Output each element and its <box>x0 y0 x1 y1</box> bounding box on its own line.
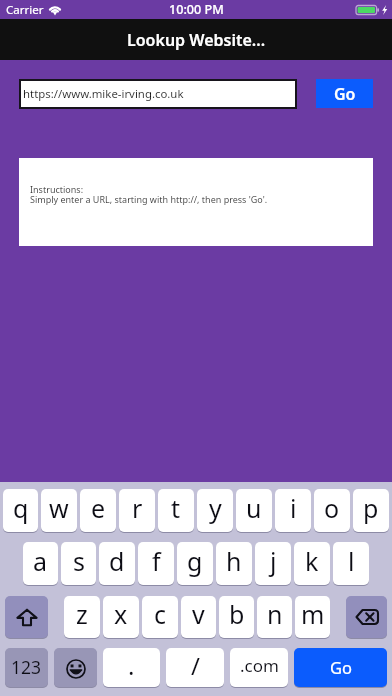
button[interactable]: m <box>295 596 330 638</box>
staticText: x <box>114 597 128 631</box>
staticText: m <box>301 597 325 631</box>
staticText: Go <box>334 83 356 105</box>
button[interactable]: Go <box>294 648 387 687</box>
staticText: Lookup Website... <box>127 29 266 51</box>
staticText: t <box>171 491 181 525</box>
staticText: y <box>209 491 222 525</box>
button[interactable]: f <box>138 542 174 585</box>
staticText: f <box>152 544 161 578</box>
staticText: d <box>109 544 125 578</box>
button[interactable]: https://www.mike-irving.co.uk <box>19 79 297 109</box>
staticText: r <box>132 491 143 525</box>
staticText: s <box>73 544 85 578</box>
button[interactable]: j <box>255 542 291 585</box>
staticText: Instructions: Simply enter a URL, starti… <box>30 183 268 206</box>
button[interactable]: x <box>103 596 139 638</box>
staticText: e <box>91 491 106 525</box>
button[interactable]: Emoji keyboard <box>54 648 97 687</box>
button[interactable]: Backspace <box>346 596 387 638</box>
staticText: Go <box>330 656 352 678</box>
staticText: c <box>154 597 167 631</box>
staticText: 10:00 PM <box>169 1 224 18</box>
staticText: . <box>128 649 135 682</box>
button[interactable]: o <box>314 489 350 532</box>
staticText: b <box>229 597 245 631</box>
button[interactable]: w <box>41 489 77 532</box>
staticText: z <box>76 597 88 631</box>
button[interactable]: g <box>177 542 213 585</box>
button[interactable]: s <box>61 542 96 585</box>
staticText: g <box>187 544 203 578</box>
staticText: v <box>192 597 205 631</box>
button[interactable]: p <box>353 489 389 532</box>
button[interactable]: t <box>158 489 194 532</box>
staticText: u <box>246 491 262 525</box>
button[interactable]: q <box>3 489 38 532</box>
button[interactable]: .com <box>230 648 288 687</box>
button[interactable]: b <box>219 596 254 638</box>
button[interactable]: h <box>216 542 252 585</box>
button[interactable]: c <box>142 596 178 638</box>
button[interactable]: k <box>294 542 330 585</box>
button[interactable]: l <box>333 542 369 585</box>
staticText: j <box>270 544 277 578</box>
staticText: n <box>267 597 283 631</box>
staticText: h <box>226 544 242 578</box>
button[interactable]: z <box>64 596 100 638</box>
button[interactable]: r <box>119 489 155 532</box>
staticText: i <box>290 491 297 525</box>
button[interactable]: i <box>275 489 311 532</box>
button[interactable]: u <box>236 489 272 532</box>
button[interactable]: / <box>166 648 224 687</box>
button[interactable]: . <box>103 648 160 687</box>
button[interactable]: Instructions: Simply enter a URL, starti… <box>19 158 373 246</box>
button[interactable]: Shift <box>5 596 48 638</box>
staticText: https://www.mike-irving.co.uk <box>23 86 184 102</box>
staticText: w <box>49 491 69 525</box>
staticText: l <box>348 544 355 578</box>
staticText: o <box>324 491 340 525</box>
button[interactable]: Go <box>316 79 373 108</box>
staticText: a <box>33 544 48 578</box>
button[interactable]: y <box>197 489 233 532</box>
button[interactable]: v <box>181 596 216 638</box>
staticText: k <box>305 544 319 578</box>
button[interactable]: a <box>23 542 58 585</box>
button[interactable]: e <box>80 489 116 532</box>
staticText: / <box>191 649 200 682</box>
staticText: p <box>363 491 379 525</box>
staticText: 123 <box>11 655 42 679</box>
staticText: q <box>13 491 29 525</box>
button[interactable]: Lookup Website... <box>0 19 392 60</box>
button[interactable]: n <box>257 596 292 638</box>
button[interactable]: 123 <box>5 648 48 687</box>
staticText: Carrier <box>6 2 44 18</box>
staticText: .com <box>240 654 279 677</box>
button[interactable]: d <box>99 542 135 585</box>
